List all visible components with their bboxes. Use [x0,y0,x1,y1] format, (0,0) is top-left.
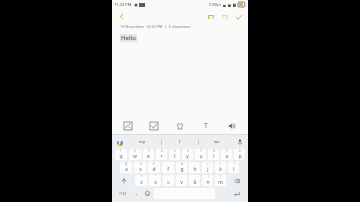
button[interactable]: ; [189,175,200,186]
button[interactable]: Voice input [235,137,245,147]
staticText: 0.0Kb/s [209,2,222,7]
button[interactable]: & [176,162,187,173]
staticText: , [136,190,138,197]
button[interactable]: Theme [173,119,187,133]
staticText: 6 [187,149,189,153]
staticText: z [140,179,143,186]
staticText: # [140,162,142,166]
button[interactable]: I [162,136,198,148]
button[interactable]: Google [115,138,124,147]
staticText: a [125,166,128,173]
button[interactable]: we [199,136,235,148]
staticText: s [139,166,142,173]
staticText: j [207,166,209,173]
staticText: ' [168,175,169,179]
button[interactable]: - [189,162,200,173]
button[interactable]: 0 [234,149,245,160]
button[interactable]: " [149,175,161,186]
staticText: q [119,153,123,160]
staticText: l [233,166,235,173]
staticText: p [238,153,242,160]
button[interactable]: Checklist [147,119,161,133]
button[interactable]: # [134,162,146,173]
button[interactable]: $ [148,162,160,173]
button[interactable]: ? [215,175,226,186]
staticText: + [207,162,209,166]
staticText: we [214,139,220,145]
staticText: ?123 [119,191,127,196]
button[interactable]: Emoji [143,188,152,199]
staticText: 15 November 12:33 PM | 5 characters [120,24,191,29]
staticText: . [221,190,223,197]
button[interactable]: _ [162,162,174,173]
staticText: - [195,162,196,166]
staticText: 0 [239,149,241,153]
staticText: 3 [148,149,150,153]
staticText: ; [195,175,196,179]
button[interactable]: Backspace [228,175,245,186]
button[interactable]: ! [202,175,213,186]
button[interactable]: . [217,188,226,199]
staticText: w [133,153,137,160]
staticText: r [160,153,163,160]
staticText: b [193,179,197,186]
staticText: u [199,153,203,160]
staticText: v [180,179,183,186]
button[interactable]: 4 [156,149,167,160]
staticText: 9 [226,149,228,153]
button[interactable]: Redo [218,10,231,23]
staticText: f [167,166,169,173]
button[interactable]: 2 [129,149,141,160]
staticText: t [174,153,176,160]
button[interactable]: ?123 [115,188,130,199]
staticText: " [155,175,157,179]
button[interactable]: Hello [121,34,136,42]
staticText: c [167,179,170,186]
button[interactable]: 3 [143,149,154,160]
staticText: 8 [213,149,215,153]
button[interactable]: Insert image [121,119,135,133]
staticText: T [204,121,208,131]
button[interactable]: 1 [115,149,127,160]
staticText: h [193,166,197,173]
staticText: @ [125,162,128,166]
button[interactable]: ' [163,175,174,186]
staticText: k [219,166,222,173]
button[interactable]: 9 [221,149,232,160]
button[interactable]: my [124,136,161,148]
staticText: o [225,153,229,160]
button[interactable]: 8 [208,149,219,160]
staticText: 5 [174,149,176,153]
staticText: : [181,175,182,179]
button[interactable]: , [132,188,141,199]
staticText: d [152,166,156,173]
staticText: I [179,139,181,145]
staticText: 4 [161,149,163,153]
staticText: _ [167,162,169,166]
button[interactable]: Back [115,10,128,23]
button[interactable]: Undo [204,10,217,23]
button[interactable]: ) [228,162,239,173]
button[interactable]: Record audio [225,119,239,133]
button[interactable]: 6 [182,149,193,160]
staticText: m [218,179,223,186]
button[interactable]: 7 [195,149,206,160]
button[interactable]: 5 [169,149,180,160]
button[interactable]: @ [120,162,132,173]
button[interactable]: Done [232,10,245,23]
staticText: 7 [200,149,202,153]
button[interactable]: : [176,175,187,186]
button[interactable]: Shift [115,175,133,186]
button[interactable]: Text format [199,119,213,133]
button[interactable]: ( [215,162,226,173]
staticText: ? [220,175,222,179]
button[interactable]: + [202,162,213,173]
staticText: ! [208,175,209,179]
button[interactable]: Enter [228,188,245,199]
staticText: * [141,175,143,179]
staticText: n [206,179,210,186]
staticText: $ [153,162,155,166]
staticText: 1 [120,149,122,153]
button[interactable]: * [135,175,147,186]
